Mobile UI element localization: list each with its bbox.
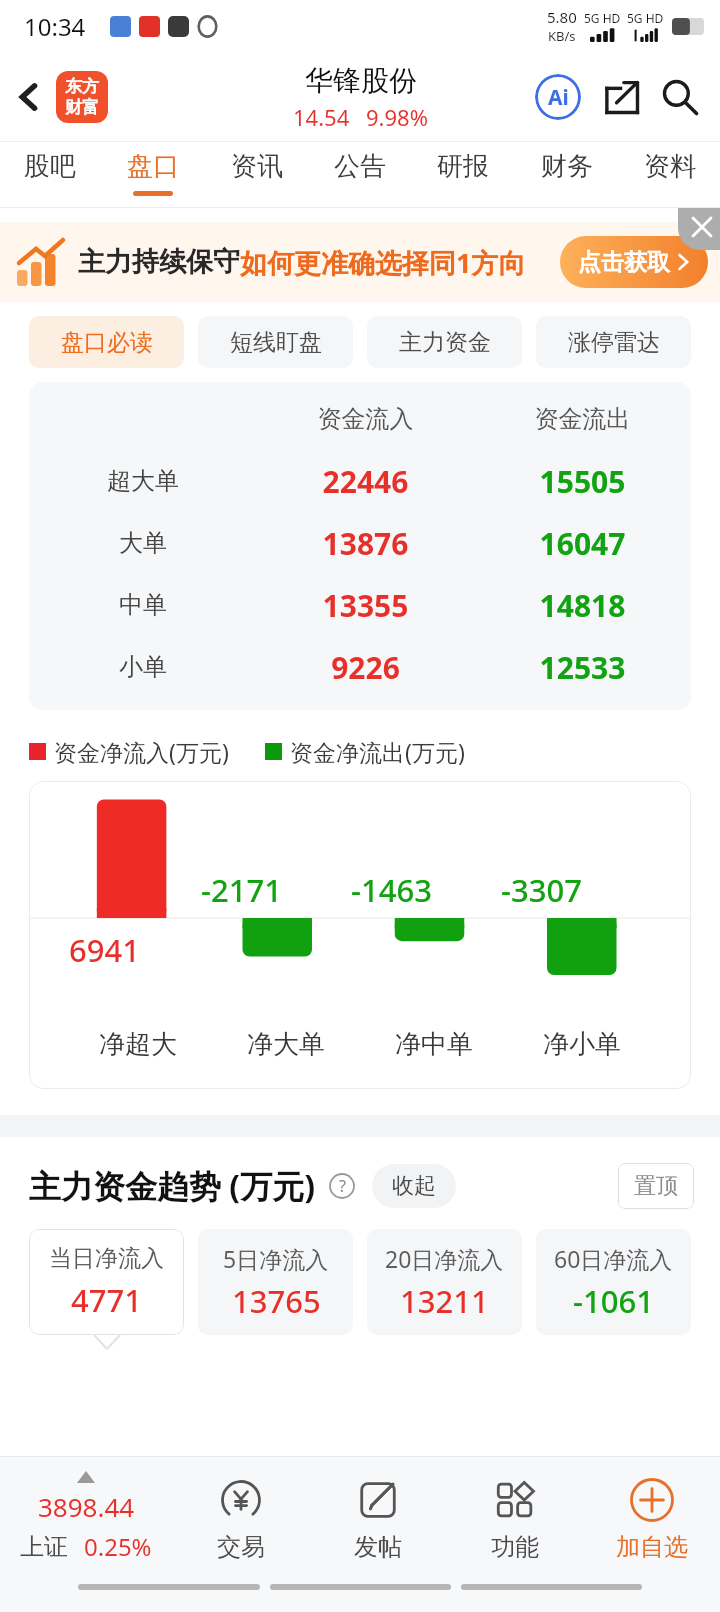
button[interactable]: 资料 (638, 142, 702, 196)
staticText: 13211 (400, 1280, 489, 1322)
staticText: 13765 (232, 1280, 321, 1322)
staticText: 财务 (541, 150, 593, 183)
button[interactable]: Search (652, 69, 708, 125)
button[interactable]: 盘口必读 (29, 316, 184, 368)
staticText: 0.25% (84, 1530, 152, 1563)
staticText: 发帖 (354, 1532, 402, 1562)
button[interactable]: 交易 (172, 1470, 309, 1570)
button[interactable]: Back (2, 70, 56, 124)
button[interactable]: Close ad (678, 208, 720, 250)
button[interactable]: 发帖 (309, 1470, 446, 1570)
staticText: 东方 (65, 76, 99, 97)
staticText: ? (339, 1175, 346, 1197)
staticText: 9226 (257, 647, 474, 688)
staticText: 盘口 (127, 150, 179, 183)
button[interactable]: 涨停雷达 (536, 316, 691, 368)
staticText: 置顶 (634, 1172, 678, 1200)
staticText: 资讯 (231, 150, 283, 183)
staticText: 研报 (437, 150, 489, 183)
staticText: 净超大 (99, 1028, 177, 1061)
button[interactable]: 点击获取 (560, 236, 708, 288)
staticText: 16047 (474, 523, 691, 564)
staticText: 60日净流入 (554, 1243, 673, 1274)
staticText: 上证 (20, 1532, 68, 1562)
button[interactable]: 功能 (446, 1470, 583, 1570)
staticText: 资金流入 (257, 404, 474, 434)
staticText: 5.80 (547, 7, 577, 27)
staticText: -1061 (573, 1280, 654, 1322)
staticText: 短线盯盘 (230, 328, 322, 357)
staticText: 资料 (644, 150, 696, 183)
staticText: 中单 (29, 590, 257, 620)
staticText: 资金净流出(万元) (290, 736, 465, 767)
staticText: Ai (548, 83, 569, 112)
staticText: 净小单 (543, 1028, 621, 1061)
staticText: 加自选 (616, 1532, 688, 1562)
staticText: 净大单 (247, 1028, 325, 1061)
staticText: KB/s (548, 27, 576, 45)
staticText: 大单 (29, 528, 257, 558)
staticText: 盘口必读 (61, 328, 153, 357)
button[interactable]: 财务 (535, 142, 599, 196)
staticText: 涨停雷达 (568, 328, 660, 357)
staticText: 13876 (257, 523, 474, 564)
staticText: 净中单 (395, 1028, 473, 1061)
staticText: 6941 (69, 929, 140, 971)
staticText: 3898.44 (38, 1489, 135, 1524)
button[interactable]: 置顶 (618, 1163, 694, 1209)
button[interactable]: 加自选 (583, 1470, 720, 1570)
button[interactable]: 当日净流入 (29, 1229, 184, 1335)
button[interactable]: 20日净流入 (367, 1229, 522, 1335)
button[interactable]: 收起 (372, 1164, 456, 1208)
staticText: 22446 (257, 461, 474, 502)
staticText: 20日净流入 (385, 1243, 504, 1274)
staticText: 点击获取 (578, 248, 670, 277)
staticText: 4771 (71, 1279, 142, 1321)
staticText: 13355 (257, 585, 474, 626)
button[interactable]: AI assistant (530, 69, 586, 125)
staticText: 公告 (334, 150, 386, 183)
staticText: 小单 (29, 652, 257, 682)
staticText: 股吧 (24, 150, 76, 183)
staticText: 主力资金 (399, 328, 491, 357)
button[interactable]: 3898.44 (0, 1471, 172, 1569)
staticText: 当日净流入 (49, 1244, 164, 1273)
staticText: 15505 (474, 461, 691, 502)
staticText: 资金净流入(万元) (54, 736, 229, 767)
staticText: 5G HD (584, 10, 621, 26)
button[interactable]: 60日净流入 (536, 1229, 691, 1335)
staticText: 5日净流入 (223, 1243, 329, 1274)
staticText: -1463 (351, 869, 432, 911)
button[interactable]: 研报 (431, 142, 495, 196)
staticText: 超大单 (29, 466, 257, 496)
button[interactable]: Help (328, 1172, 356, 1200)
staticText: 功能 (491, 1532, 539, 1562)
staticText: -2171 (201, 869, 282, 911)
staticText: 华锋股份 (305, 63, 417, 98)
button[interactable]: East Money home (56, 71, 108, 123)
staticText: 14818 (474, 585, 691, 626)
button[interactable]: 主力持续保守 (0, 222, 720, 302)
button[interactable]: 主力资金 (367, 316, 522, 368)
button[interactable]: 公告 (328, 142, 392, 196)
staticText: 12533 (474, 647, 691, 688)
staticText: 5G HD (627, 10, 664, 26)
button[interactable]: Share (594, 69, 650, 125)
button[interactable]: 盘口 (121, 142, 185, 196)
button[interactable]: 资讯 (225, 142, 289, 196)
staticText: 9.98% (366, 102, 428, 132)
staticText: 10:34 (24, 10, 86, 43)
staticText: 14.54 (293, 102, 350, 132)
staticText: 资金流出 (474, 404, 691, 434)
staticText: 收起 (392, 1172, 436, 1200)
staticText: 交易 (217, 1532, 265, 1562)
button[interactable]: 5日净流入 (198, 1229, 353, 1335)
button[interactable]: 短线盯盘 (198, 316, 353, 368)
staticText: 如何更准确选择同1方向 (240, 244, 526, 281)
staticText: 财富 (65, 97, 99, 118)
staticText: 主力持续保守 (78, 245, 240, 279)
staticText: 主力资金趋势 (万元) (29, 1164, 316, 1208)
staticText: -3307 (501, 869, 582, 911)
button[interactable]: 股吧 (18, 142, 82, 196)
